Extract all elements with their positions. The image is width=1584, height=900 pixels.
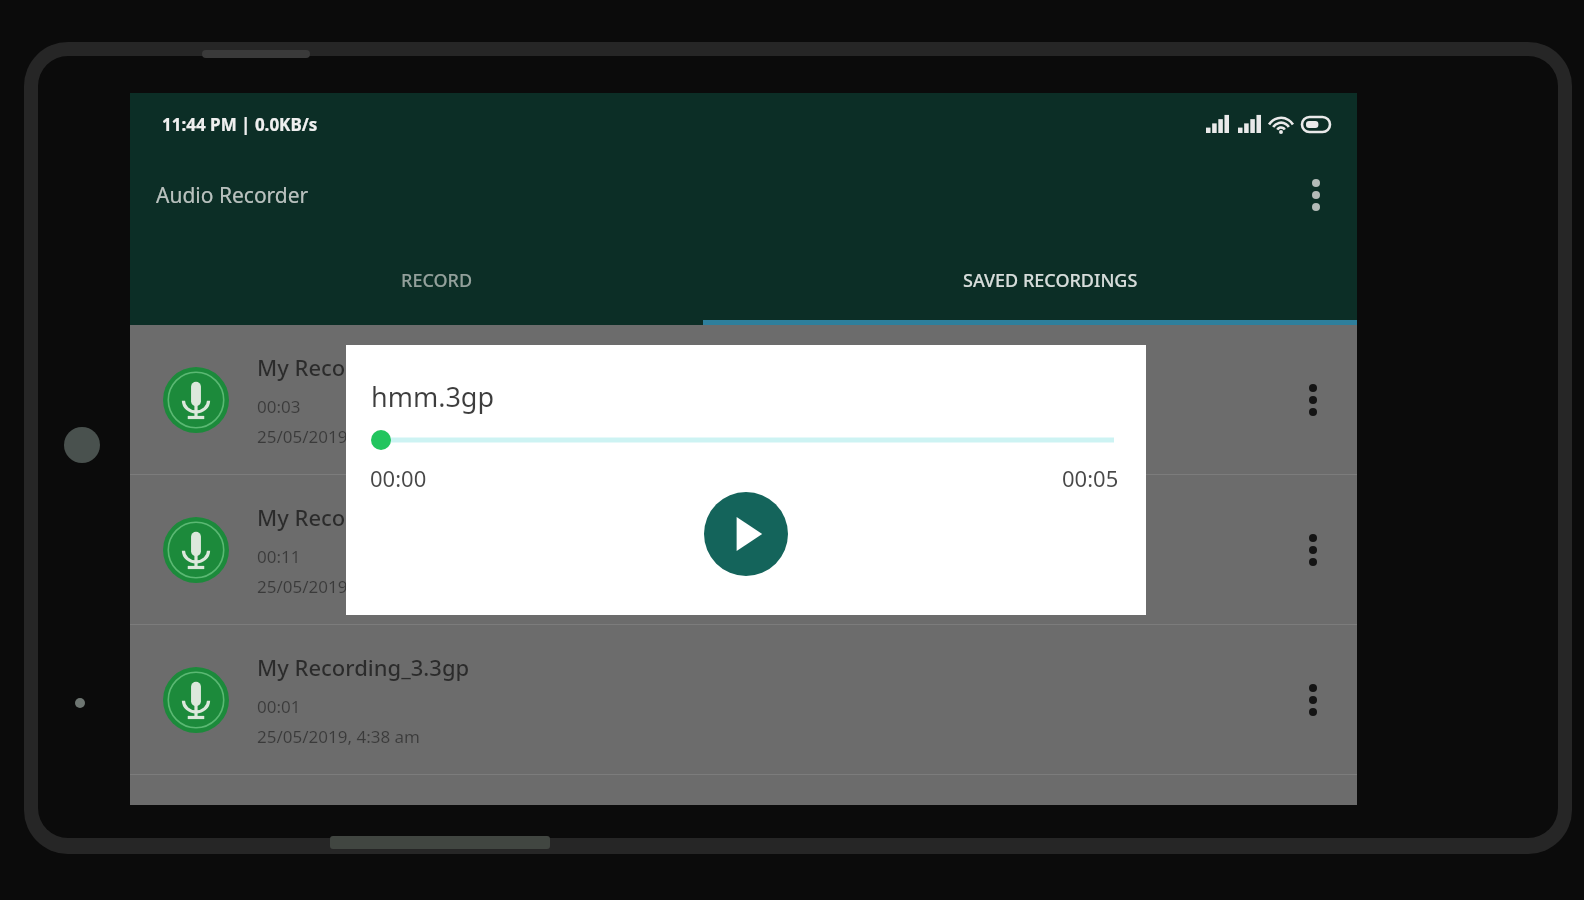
staticText: 11:44 PM | 0.0KB/s xyxy=(162,113,318,136)
button[interactable]: My Recording_2.3gp xyxy=(130,475,1357,624)
button[interactable]: Item options xyxy=(1284,371,1342,429)
staticText: 00:03 xyxy=(257,395,301,418)
staticText: 00:01 xyxy=(257,695,301,718)
staticText: RECORD xyxy=(401,268,473,293)
button[interactable]: RECORD xyxy=(130,235,743,325)
staticText: Audio Recorder xyxy=(156,181,309,210)
staticText: 00:00 xyxy=(370,463,427,493)
staticText: 25/05/2019, 11:52 pm xyxy=(257,425,431,448)
staticText: 00:05 xyxy=(1062,463,1119,493)
staticText: My Recording_2.3gp xyxy=(257,502,470,532)
button[interactable]: SAVED RECORDINGS xyxy=(743,235,1357,325)
button[interactable]: Item options xyxy=(1284,671,1342,729)
button[interactable]: Item options xyxy=(1284,521,1342,579)
staticText: 25/05/2019, 4:38 am xyxy=(257,725,420,748)
staticText: 25/05/2019, 11:48 pm xyxy=(257,575,431,598)
button[interactable]: Play xyxy=(704,492,788,576)
staticText: SAVED RECORDINGS xyxy=(963,268,1138,293)
staticText: My Recording_3.3gp xyxy=(257,652,470,682)
button[interactable]: My Recording_1.3gp xyxy=(130,325,1357,474)
staticText: My Recording_1.3gp xyxy=(257,352,470,382)
staticText: 00:11 xyxy=(257,545,301,568)
staticText: hmm.3gp xyxy=(371,378,495,415)
button[interactable]: My Recording_3.3gp xyxy=(130,625,1357,774)
button[interactable]: More options xyxy=(1291,170,1341,220)
